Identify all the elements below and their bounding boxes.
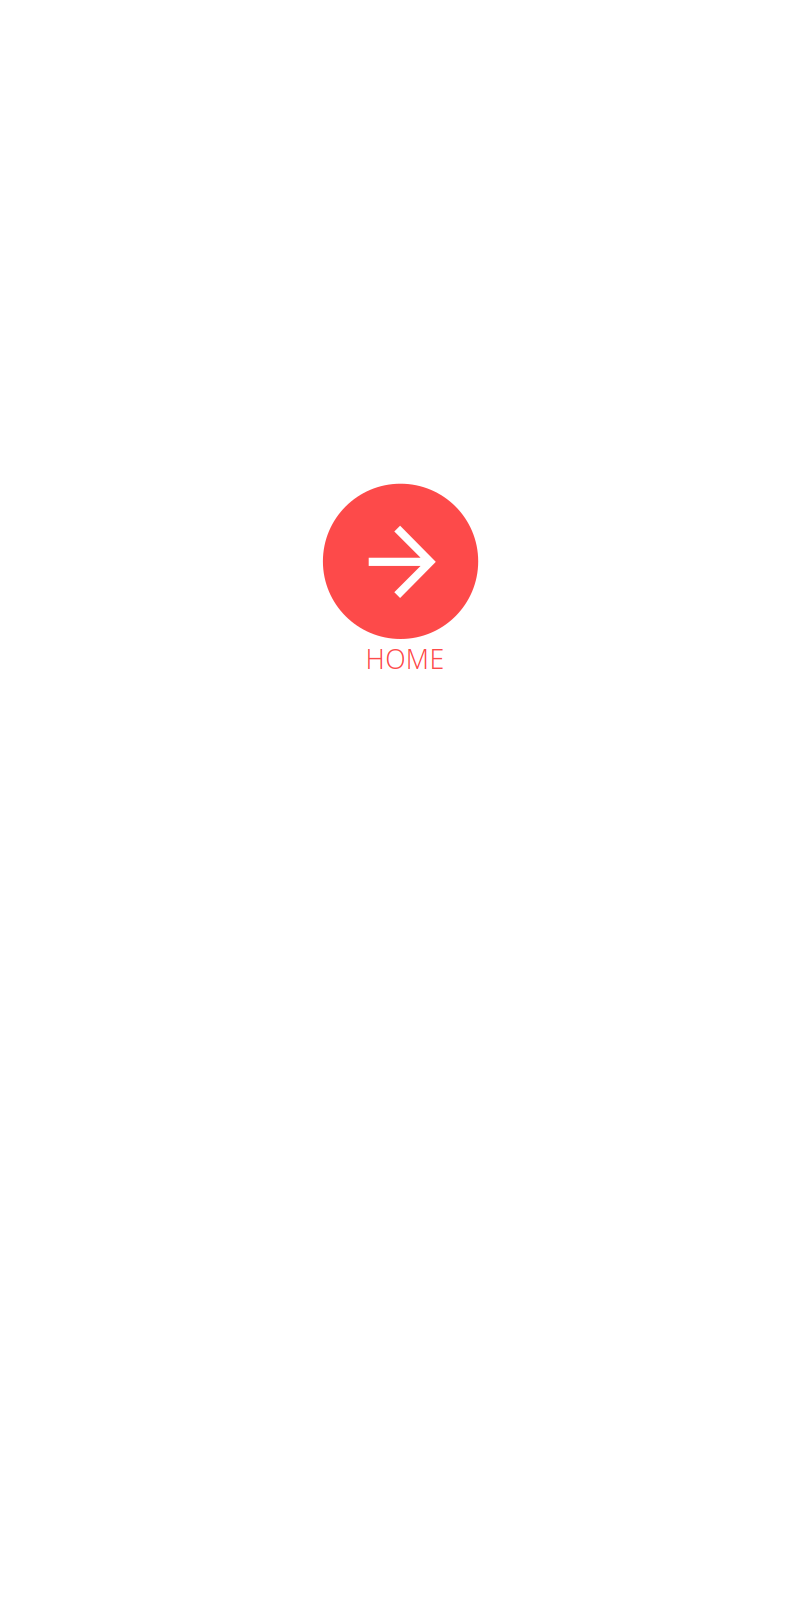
- staticText: HOME: [366, 641, 444, 676]
- button[interactable]: Home: [322, 484, 478, 676]
